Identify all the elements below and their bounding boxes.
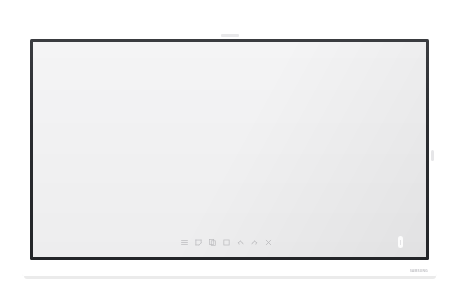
button[interactable]: Frame xyxy=(222,238,231,247)
button[interactable]: Menu xyxy=(180,238,189,247)
button[interactable]: Close xyxy=(264,238,273,247)
button[interactable]: Redo xyxy=(250,238,259,247)
button[interactable]: Undo xyxy=(236,238,245,247)
other: Side button xyxy=(431,150,434,161)
button[interactable]: Copy xyxy=(208,238,217,247)
button[interactable]: Note xyxy=(194,238,203,247)
staticText: SAMSUNG xyxy=(409,269,428,273)
button[interactable]: Pen tool xyxy=(398,236,403,248)
